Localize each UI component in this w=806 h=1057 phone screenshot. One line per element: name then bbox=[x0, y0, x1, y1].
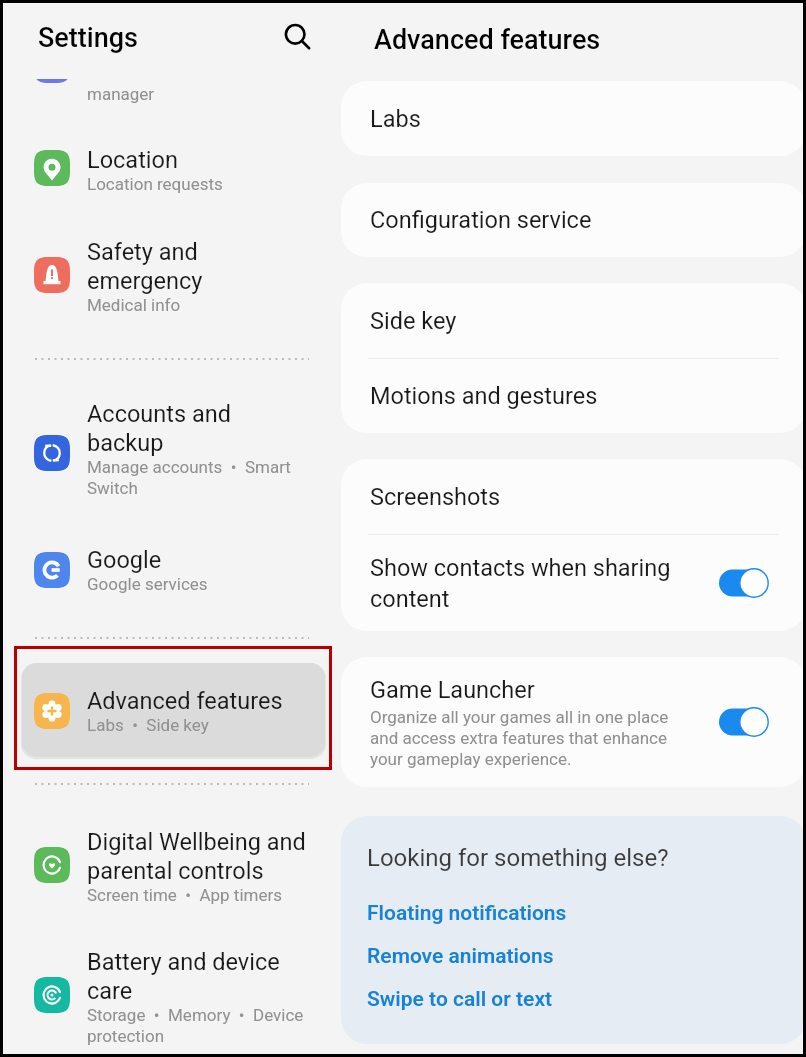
button[interactable]: Toggle on bbox=[719, 568, 769, 598]
staticText: Floating notifications bbox=[367, 901, 567, 926]
staticText: manager bbox=[87, 84, 155, 104]
button[interactable]: Swipe to call or text bbox=[367, 978, 553, 1021]
button[interactable]: Motions and gestures bbox=[341, 359, 803, 433]
staticText: Labs • Side key bbox=[87, 715, 209, 735]
staticText: Google bbox=[87, 546, 162, 574]
button[interactable]: Side key bbox=[341, 283, 803, 358]
button[interactable] bbox=[3, 828, 333, 924]
staticText: Advanced features bbox=[374, 24, 601, 56]
staticText: Location requests bbox=[87, 174, 223, 194]
staticText: Google services bbox=[87, 574, 208, 594]
button[interactable] bbox=[3, 546, 333, 642]
staticText: Looking for something else? bbox=[367, 844, 669, 872]
button[interactable]: Floating notifications bbox=[367, 892, 567, 935]
staticText: Game Launcher bbox=[370, 676, 535, 704]
staticText: Screenshots bbox=[370, 483, 501, 511]
staticText: Organize all your games all in one place… bbox=[370, 707, 669, 769]
staticText: Accounts and backup bbox=[87, 400, 231, 457]
staticText: Side key bbox=[370, 307, 457, 335]
button[interactable] bbox=[3, 146, 333, 242]
staticText: Medical info bbox=[87, 295, 181, 315]
button[interactable]: Search bbox=[280, 18, 316, 54]
staticText: Swipe to call or text bbox=[367, 987, 553, 1012]
staticText: Digital Wellbeing and parental controls bbox=[87, 828, 306, 885]
button[interactable] bbox=[3, 238, 333, 334]
staticText: Battery and device care bbox=[87, 948, 280, 1005]
button[interactable]: Toggle on bbox=[719, 707, 769, 737]
staticText: Location bbox=[87, 146, 178, 174]
button[interactable]: Screenshots bbox=[341, 459, 803, 534]
button[interactable] bbox=[3, 948, 333, 1044]
button[interactable] bbox=[3, 687, 333, 783]
staticText: Motions and gestures bbox=[370, 382, 598, 410]
staticText: Remove animations bbox=[367, 944, 554, 969]
staticText: Labs bbox=[370, 105, 421, 133]
staticText: Settings bbox=[38, 22, 138, 54]
button[interactable]: Game Launcher bbox=[341, 657, 803, 787]
button[interactable]: Remove animations bbox=[367, 935, 554, 978]
button[interactable]: Labs bbox=[341, 81, 803, 156]
button[interactable]: Configuration service bbox=[341, 183, 803, 257]
staticText: Show contacts when sharing content bbox=[370, 554, 671, 612]
staticText: Storage • Memory • Device protection bbox=[87, 1005, 304, 1046]
staticText: Configuration service bbox=[370, 206, 592, 234]
staticText: Manage accounts • Smart Switch bbox=[87, 457, 291, 498]
button[interactable]: Show contacts when sharing content bbox=[341, 535, 803, 631]
button[interactable] bbox=[3, 400, 333, 496]
staticText: Advanced features bbox=[87, 687, 283, 715]
staticText: Screen time • App timers bbox=[87, 885, 283, 905]
staticText: Safety and emergency bbox=[87, 238, 203, 295]
